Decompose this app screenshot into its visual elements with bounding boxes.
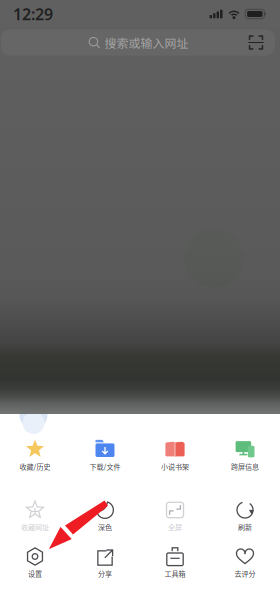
button[interactable]: 扫一扫 [241, 29, 271, 55]
button[interactable]: 设置 [0, 531, 70, 581]
button[interactable]: 刷新 [210, 485, 280, 535]
staticText: 小说书架 [161, 461, 189, 472]
staticText: 收藏网址 [21, 522, 49, 532]
staticText: 下载/文件 [89, 461, 120, 472]
staticText: 工具箱 [164, 568, 185, 579]
staticText: 12:29 [13, 3, 53, 25]
button[interactable]: 去评分 [210, 531, 280, 581]
button[interactable]: 跨屏信息 [210, 424, 280, 474]
button[interactable]: 小说书架 [140, 424, 210, 474]
staticText: 收藏/历史 [19, 461, 50, 472]
staticText: 分享 [98, 568, 112, 579]
button[interactable]: 收藏网址 [0, 485, 70, 535]
button[interactable]: 深色 [70, 485, 140, 535]
button[interactable]: 收藏/历史 [0, 424, 70, 474]
staticText: 全屏 [168, 522, 182, 532]
button[interactable]: 工具箱 [140, 531, 210, 581]
staticText: 深色 [98, 522, 112, 532]
button[interactable]: 分享 [70, 531, 140, 581]
staticText: 刷新 [238, 522, 252, 532]
staticText: 设置 [28, 568, 42, 579]
button[interactable]: 搜索或输入网址 [38, 29, 238, 55]
staticText: 跨屏信息 [231, 461, 259, 472]
button[interactable]: 下载/文件 [70, 424, 140, 474]
staticText: 去评分 [234, 568, 255, 579]
button[interactable]: 全屏 [140, 485, 210, 535]
staticText: 搜索或输入网址 [104, 34, 188, 51]
